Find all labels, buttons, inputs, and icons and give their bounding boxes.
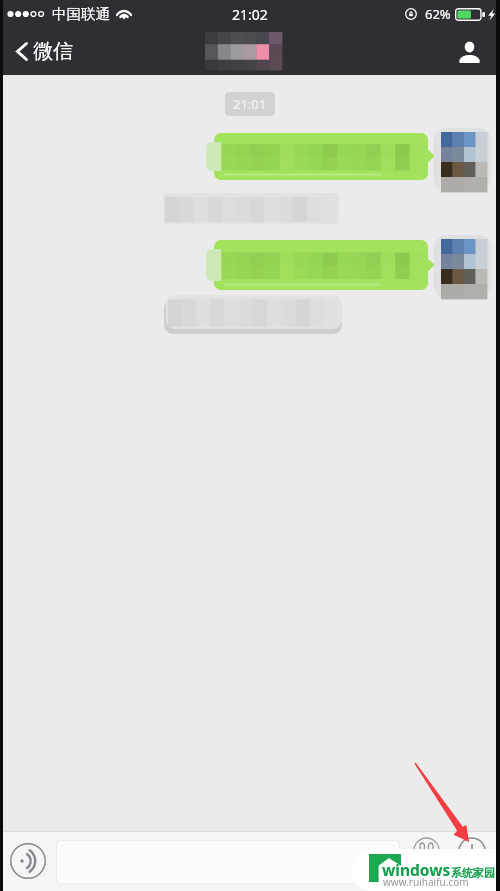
button[interactable] <box>56 840 400 884</box>
staticText: www.ruihaifu.com <box>383 875 469 889</box>
staticText: 62% <box>425 5 451 23</box>
button[interactable]: Voice input <box>10 843 46 879</box>
button[interactable] <box>163 193 339 224</box>
button[interactable]: 微信 <box>0 31 87 72</box>
button[interactable] <box>214 133 428 180</box>
staticText: 21:02 <box>232 5 268 24</box>
staticText: windows <box>382 859 451 880</box>
button[interactable]: More <box>458 837 486 865</box>
button[interactable]: Emoji <box>413 837 440 864</box>
button[interactable] <box>214 240 428 290</box>
staticText: 微信 <box>33 39 73 64</box>
staticText: 系统家园 <box>451 866 495 880</box>
button[interactable]: Sender avatar <box>441 132 487 192</box>
button[interactable]: Sender avatar <box>441 239 487 299</box>
staticText: 21:01 <box>233 95 267 113</box>
staticText: 中国联通 <box>52 5 110 23</box>
button[interactable] <box>166 295 342 329</box>
button[interactable]: Contact profile <box>452 35 486 69</box>
